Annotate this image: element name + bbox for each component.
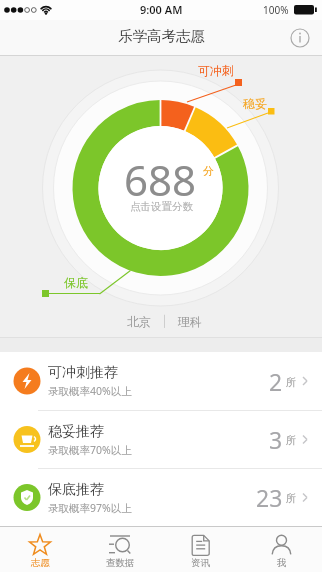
staticText: 乐学高考志愿	[118, 27, 205, 45]
button[interactable]: 可冲刺推荐	[0, 352, 322, 410]
staticText: 理科	[178, 314, 202, 329]
button[interactable]: 保底推荐	[0, 469, 322, 526]
staticText: 所	[286, 376, 297, 389]
staticText: 录取概率97%以上	[48, 501, 132, 515]
staticText: 3	[269, 424, 283, 455]
button[interactable]: 资讯	[160, 526, 241, 572]
staticText: 23	[256, 482, 283, 513]
button[interactable]: 我	[241, 526, 322, 572]
staticText: 保底推荐	[48, 481, 104, 499]
staticText: 稳妥	[243, 96, 267, 111]
staticText: 录取概率70%以上	[48, 443, 132, 457]
button[interactable]: 志愿	[0, 526, 80, 572]
button[interactable]	[290, 28, 310, 48]
staticText: 688	[124, 151, 197, 208]
staticText: 稳妥推荐	[48, 423, 104, 441]
button[interactable]: 可冲刺	[0, 56, 322, 337]
staticText: 所	[286, 434, 297, 447]
staticText: 所	[286, 492, 297, 505]
staticText: 我	[277, 557, 287, 569]
staticText: 2	[269, 366, 283, 397]
staticText: 点击设置分数	[130, 200, 193, 213]
staticText: 100%	[263, 3, 289, 17]
button[interactable]: 稳妥推荐	[0, 411, 322, 468]
staticText: 志愿	[31, 557, 50, 569]
staticText: 录取概率40%以上	[48, 384, 132, 398]
staticText: 北京	[127, 314, 151, 329]
staticText: 可冲刺推荐	[48, 364, 118, 382]
staticText: 查数据	[106, 557, 135, 569]
button[interactable]: 查数据	[80, 526, 160, 572]
staticText: 资讯	[191, 557, 210, 569]
staticText: 保底	[64, 275, 88, 290]
staticText: 分	[203, 164, 214, 178]
staticText: 9:00 AM	[140, 2, 183, 17]
staticText: 可冲刺	[198, 63, 234, 78]
staticText: │	[161, 315, 168, 328]
